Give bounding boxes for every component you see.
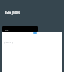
staticText: { "k": 1 } xyxy=(4,40,13,43)
staticText: Edit JSON xyxy=(5,11,20,15)
staticText: key xyxy=(5,29,9,32)
